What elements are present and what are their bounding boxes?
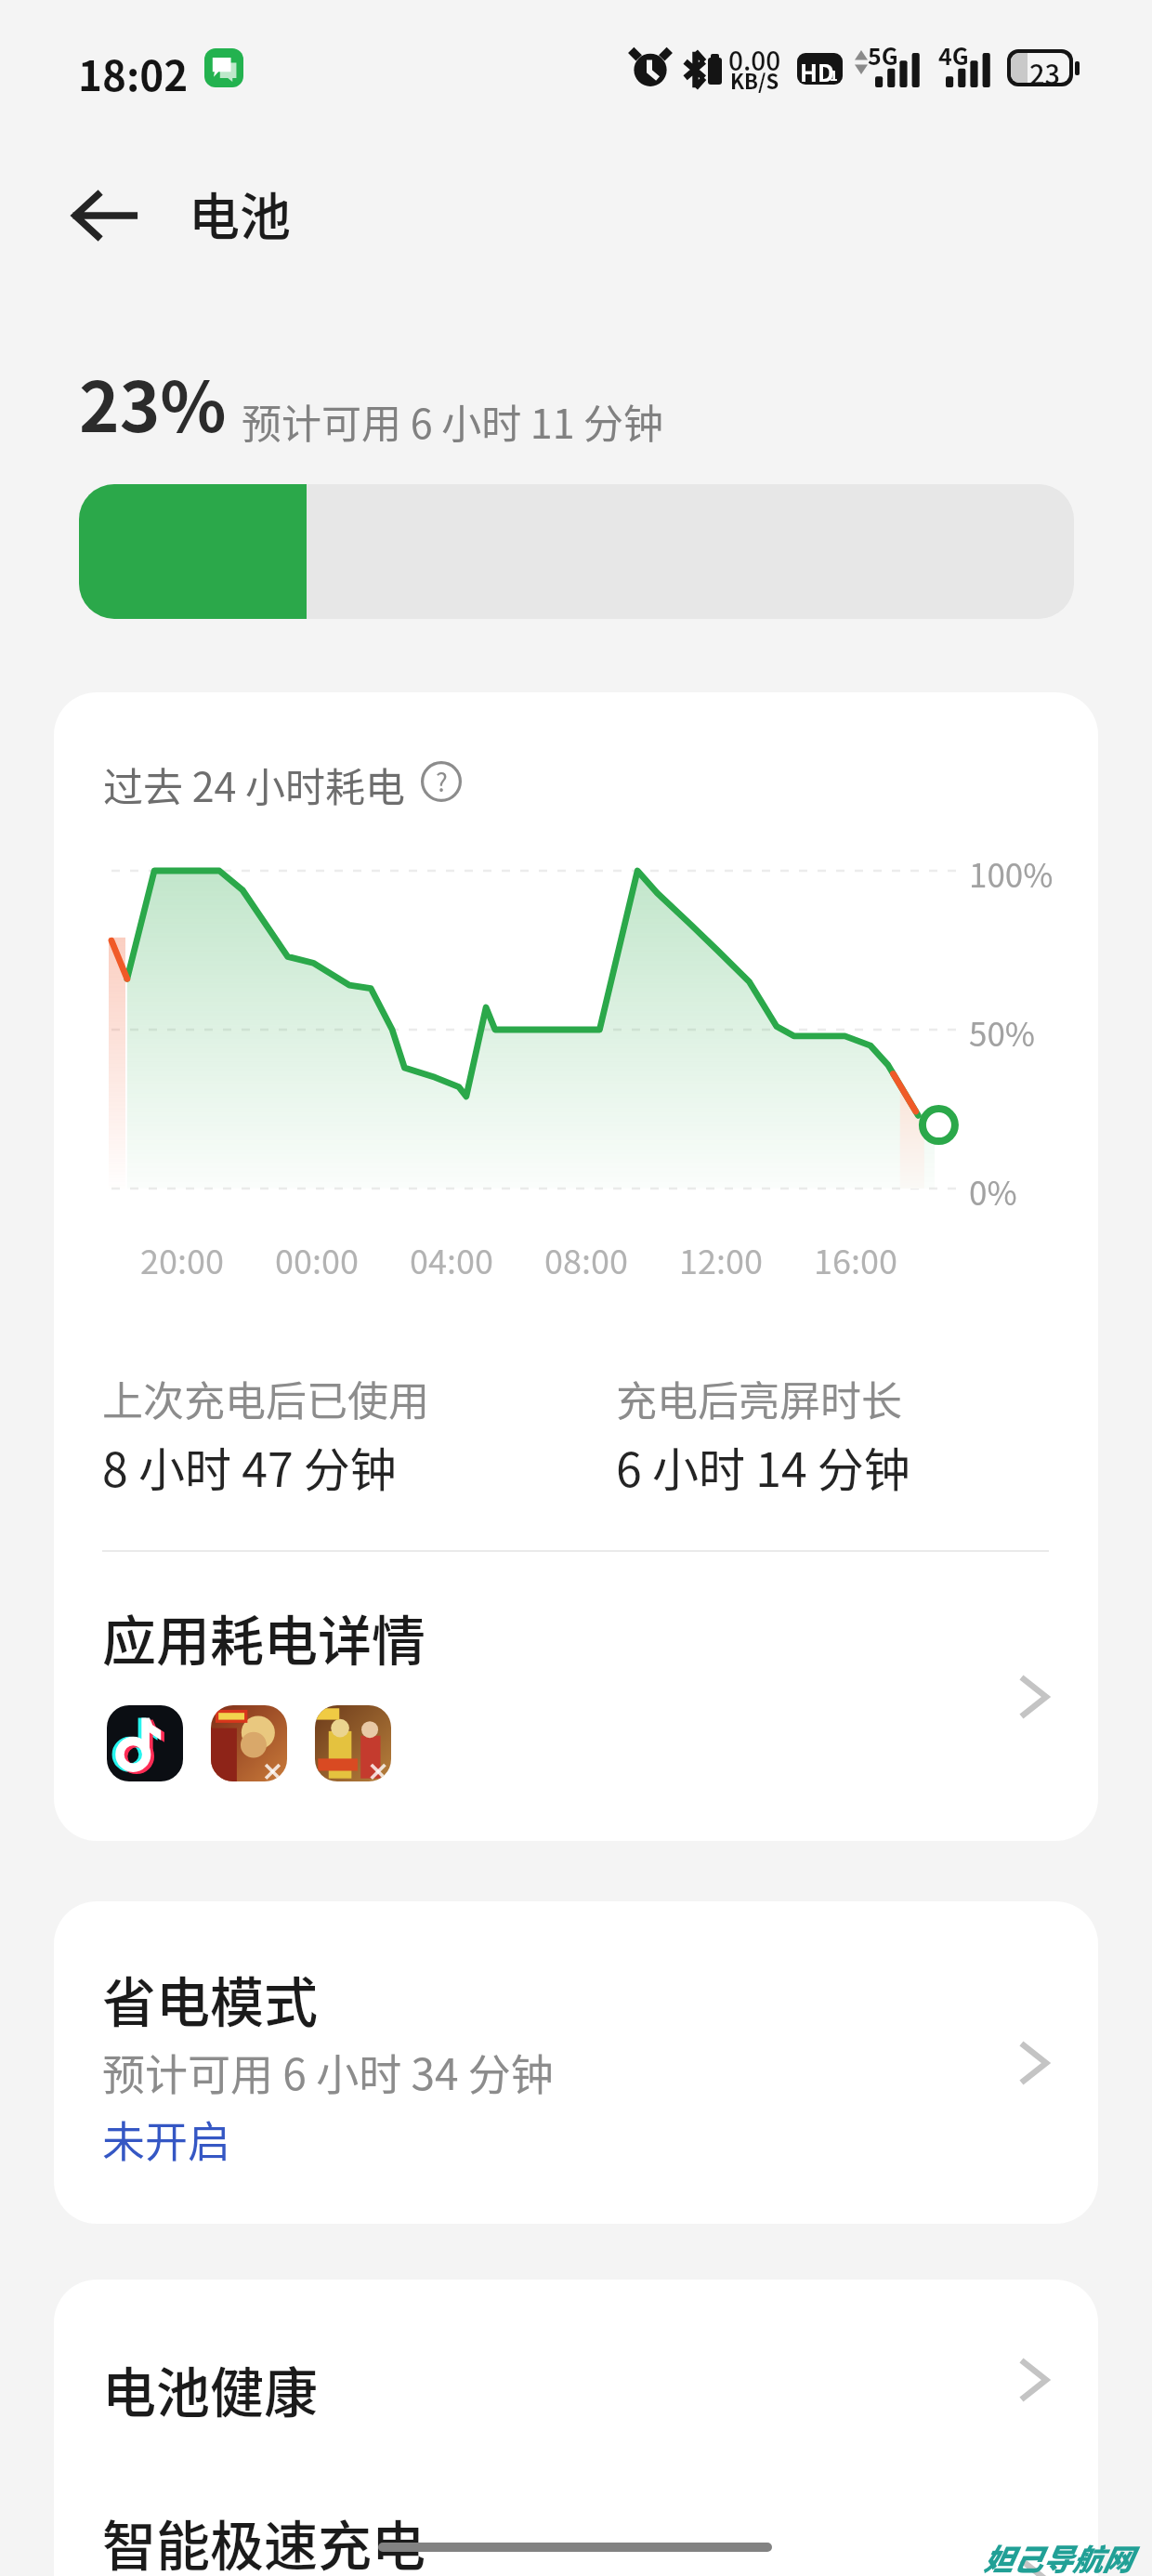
button[interactable]: 智能极速充电 <box>54 2479 1098 2576</box>
button[interactable]: 省电模式 <box>54 1901 1098 2224</box>
button[interactable]: 电池健康 <box>54 2280 1098 2479</box>
staticText: 省电模式 <box>102 1960 319 2038</box>
staticText: 预计可用 6 小时 34 分钟 <box>102 2041 554 2103</box>
staticText: 1 <box>830 65 838 85</box>
staticText: 智能极速充电 <box>102 2504 426 2576</box>
staticText: ? <box>436 763 448 799</box>
staticText: 00:00 <box>275 1235 359 1283</box>
staticText: 上次充电后已使用 <box>102 1369 429 1428</box>
staticText: 未开启 <box>102 2108 230 2170</box>
staticText: 04:00 <box>410 1235 493 1283</box>
button[interactable]: Back <box>58 169 151 262</box>
staticText: 16:00 <box>814 1235 897 1283</box>
staticText: 预计可用 6 小时 11 分钟 <box>242 392 664 450</box>
staticText: 23% <box>79 352 227 452</box>
button[interactable]: Help <box>421 761 462 802</box>
staticText: 充电后亮屏时长 <box>616 1369 902 1428</box>
staticText: 4G <box>938 38 969 72</box>
staticText: 23 <box>1029 53 1061 83</box>
staticText: 电池健康 <box>102 2350 319 2428</box>
staticText: 12:00 <box>679 1235 763 1283</box>
staticText: 18:02 <box>78 44 189 103</box>
staticText: 0.00 <box>728 41 781 79</box>
staticText: KB/S <box>730 65 779 95</box>
staticText: 电池 <box>189 176 292 250</box>
staticText: 过去 24 小时耗电 <box>103 756 405 813</box>
staticText: HD <box>800 55 834 85</box>
staticText: 0% <box>969 1167 1017 1215</box>
staticText: 应用耗电详情 <box>102 1598 426 1676</box>
staticText: 100% <box>969 849 1054 897</box>
staticText: 8 小时 47 分钟 <box>102 1433 397 1500</box>
staticText: 50% <box>969 1008 1036 1056</box>
staticText: 20:00 <box>140 1235 224 1283</box>
button[interactable]: 应用耗电详情 <box>54 1552 1098 1841</box>
staticText: 5G <box>868 38 898 72</box>
staticText: 6 小时 14 分钟 <box>616 1433 910 1500</box>
staticText: 妲己导航网 <box>983 2536 1132 2576</box>
staticText: 08:00 <box>544 1235 628 1283</box>
